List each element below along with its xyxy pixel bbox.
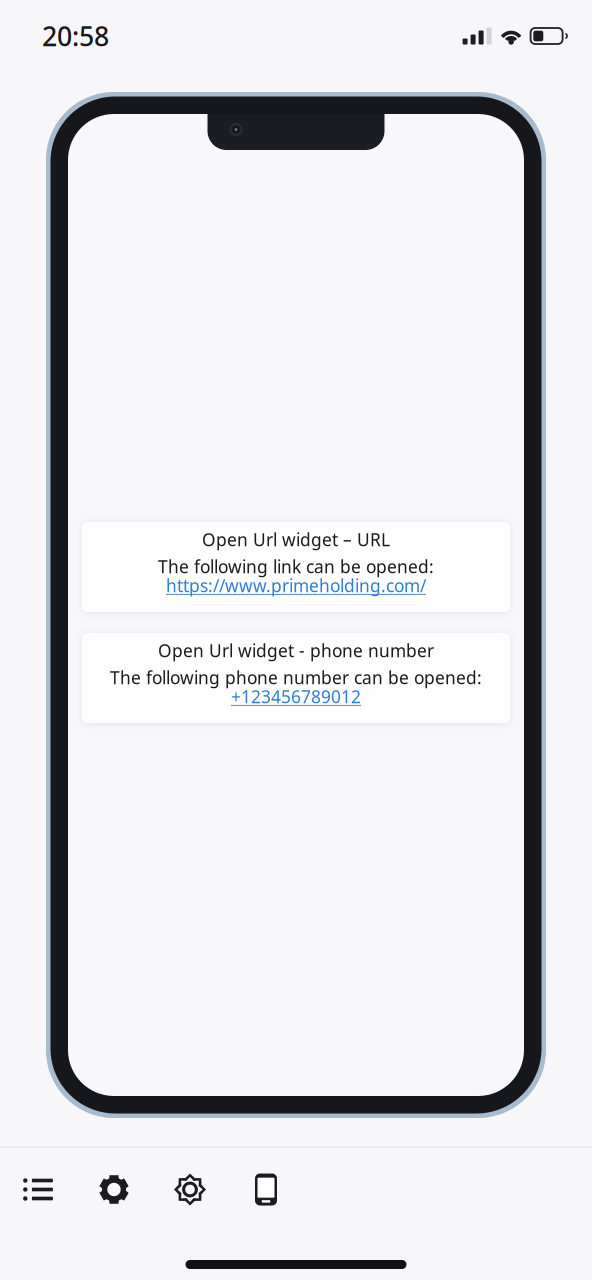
staticText: Open Url widget - phone number (158, 639, 434, 662)
staticText: +123456789012 (231, 685, 361, 708)
button[interactable]: List (0, 1159, 76, 1219)
button[interactable]: https://www.primeholding.com/ (166, 577, 426, 594)
staticText: 20:58 (42, 18, 109, 54)
staticText: The following phone number can be opened… (110, 666, 482, 689)
staticText: Open Url widget – URL (202, 528, 390, 551)
staticText: The following link can be opened: (158, 555, 434, 578)
button[interactable]: Appearance (152, 1159, 228, 1219)
button[interactable]: Settings (76, 1159, 152, 1219)
staticText: https://www.primeholding.com/ (166, 574, 426, 597)
button[interactable]: Device (228, 1159, 304, 1219)
button[interactable]: +123456789012 (231, 688, 361, 705)
